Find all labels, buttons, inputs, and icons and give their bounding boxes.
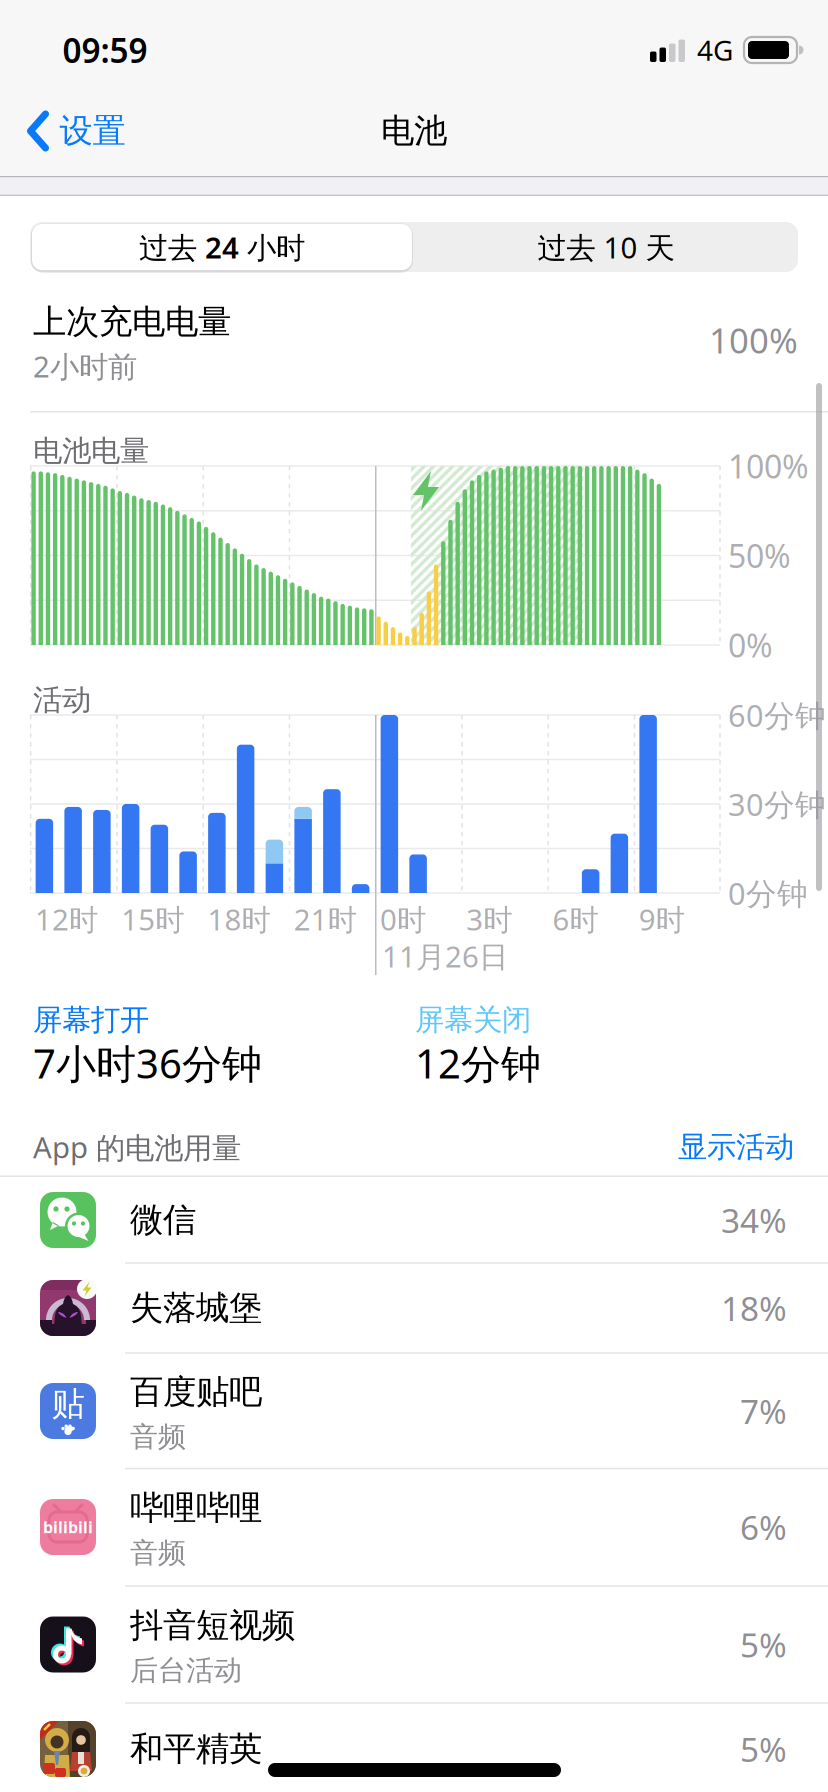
staticText: 5% — [740, 1622, 787, 1667]
staticText: 抖音短视频 — [130, 1605, 295, 1646]
staticText: 50% — [728, 534, 791, 577]
button[interactable]: 抖音短视频 — [0, 1586, 828, 1702]
staticText: 09:59 — [62, 28, 147, 72]
staticText: 贴 — [51, 1383, 84, 1424]
staticText: 5% — [740, 1727, 787, 1771]
staticText: 0时 — [380, 899, 426, 938]
staticText: 100% — [728, 445, 809, 487]
staticText: 哔哩哔哩 — [130, 1487, 262, 1528]
staticText: App 的电池用量 — [33, 1127, 241, 1166]
staticText: 11月26日 — [382, 936, 508, 975]
staticText: 后台活动 — [130, 1653, 242, 1688]
staticText: 音频 — [130, 1536, 186, 1570]
staticText: 百度贴吧 — [130, 1371, 262, 1412]
staticText: 30分钟 — [728, 784, 826, 824]
staticText: 18时 — [207, 899, 270, 938]
button[interactable]: bilibili — [0, 1469, 828, 1585]
staticText: 电池 — [381, 110, 447, 151]
staticText: 过去 24 小时 — [139, 227, 305, 266]
staticText: 屏幕打开 — [33, 1002, 149, 1038]
staticText: 12分钟 — [415, 1036, 541, 1089]
staticText: 9时 — [639, 899, 685, 938]
button[interactable]: 显示活动 — [656, 1122, 816, 1172]
staticText: 失落城堡 — [130, 1287, 262, 1328]
staticText: 电池电量 — [33, 433, 149, 469]
staticText: 34% — [721, 1198, 787, 1242]
staticText: 12时 — [35, 899, 98, 938]
staticText: 0分钟 — [728, 873, 808, 913]
staticText: 60分钟 — [728, 695, 826, 735]
staticText: 音频 — [130, 1420, 186, 1454]
button[interactable]: 失落城堡 — [0, 1264, 828, 1352]
staticText: 7小时36分钟 — [33, 1036, 262, 1089]
staticText: 活动 — [33, 682, 91, 718]
staticText: 4G — [697, 31, 733, 69]
staticText: 7% — [740, 1389, 787, 1433]
button[interactable]: 和平精英 — [0, 1705, 828, 1792]
staticText: 微信 — [130, 1199, 196, 1240]
staticText: bilibili — [43, 1516, 93, 1538]
button[interactable]: 贴 — [0, 1353, 828, 1469]
staticText: 过去 10 天 — [537, 227, 674, 266]
button[interactable]: 过去 10 天 — [416, 224, 796, 270]
staticText: 6% — [740, 1505, 787, 1549]
staticText: 18% — [721, 1286, 787, 1330]
staticText: 15时 — [121, 899, 184, 938]
button[interactable]: 过去 24 小时 — [32, 224, 412, 270]
button[interactable]: 返回设置 — [28, 110, 125, 151]
staticText: 设置 — [59, 110, 125, 151]
staticText: 显示活动 — [678, 1129, 794, 1165]
staticText: 6时 — [552, 899, 598, 938]
staticText: 100% — [709, 317, 798, 363]
staticText: 3时 — [466, 899, 512, 938]
staticText: 0% — [728, 624, 773, 666]
staticText: 和平精英 — [130, 1728, 262, 1769]
staticText: 21时 — [294, 899, 357, 938]
staticText: 2小时前 — [33, 346, 137, 385]
staticText: 屏幕关闭 — [415, 1002, 531, 1038]
staticText: 上次充电电量 — [33, 301, 231, 342]
button[interactable]: 微信 — [0, 1176, 828, 1264]
